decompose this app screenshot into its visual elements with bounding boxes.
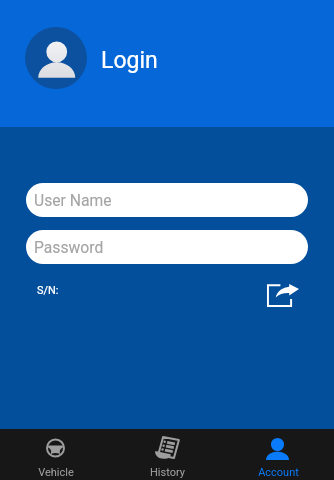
button[interactable]: History xyxy=(112,429,223,480)
staticText: User Name xyxy=(34,191,112,209)
button[interactable]: Account xyxy=(223,429,334,480)
button[interactable]: User Name xyxy=(26,183,308,217)
staticText: Vehicle xyxy=(38,466,74,479)
button[interactable]: Profile picture xyxy=(25,27,87,89)
staticText: Password xyxy=(34,238,104,256)
staticText: Account xyxy=(258,466,299,479)
staticText: History xyxy=(150,466,185,479)
button[interactable]: Password xyxy=(26,230,308,264)
button[interactable]: Vehicle xyxy=(0,429,112,480)
staticText: S/N: xyxy=(37,284,59,297)
button[interactable]: Share serial number xyxy=(264,281,302,309)
staticText: Login xyxy=(101,47,158,74)
